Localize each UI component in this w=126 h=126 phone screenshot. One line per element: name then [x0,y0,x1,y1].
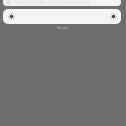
button[interactable]: Brightness up [108,11,119,22]
button[interactable]: Brightness down [6,11,17,22]
button[interactable]: Google Home · Living room lamp [3,0,121,6]
staticText: Google Home · Living room lamp [13,0,91,6]
staticText: Bright [0,25,126,31]
